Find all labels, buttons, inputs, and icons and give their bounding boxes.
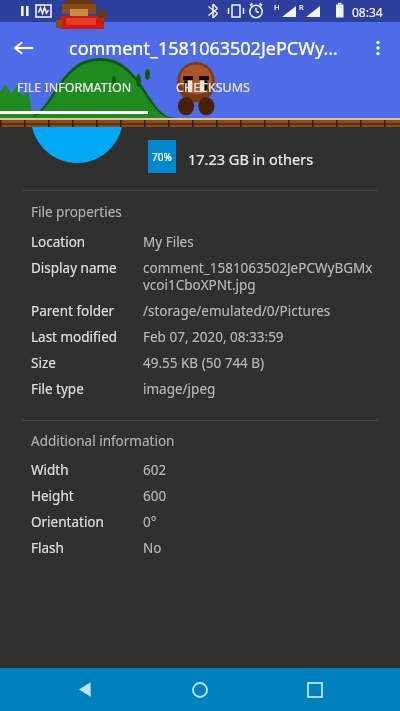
staticText: image/jpeg xyxy=(143,380,216,398)
staticText: File type xyxy=(31,380,84,398)
staticText: Width xyxy=(31,461,69,479)
button[interactable]: CHECKSUMS xyxy=(148,74,278,100)
button[interactable]: FILE INFORMATION xyxy=(0,74,148,100)
button[interactable]: More options xyxy=(356,26,400,70)
staticText: H xyxy=(274,2,280,12)
staticText: comment_1581063502JePCWy… xyxy=(69,36,338,61)
staticText: Location xyxy=(31,233,86,251)
button[interactable]: Back xyxy=(55,668,115,711)
staticText: My Files xyxy=(143,233,194,251)
staticText: CHECKSUMS xyxy=(176,79,250,96)
staticText: File properties xyxy=(31,203,122,221)
staticText: 17.23 GB in others xyxy=(188,149,314,169)
staticText: R xyxy=(299,2,304,12)
staticText: /storage/emulated/0/Pictures xyxy=(143,302,331,320)
staticText: 49.55 KB (50 744 B) xyxy=(143,354,265,372)
staticText: Orientation xyxy=(31,513,104,531)
staticText: Height xyxy=(31,487,74,505)
staticText: 70% xyxy=(152,150,172,164)
staticText: Additional information xyxy=(31,432,175,450)
button[interactable]: Recent apps xyxy=(285,668,345,711)
staticText: No xyxy=(143,539,162,557)
staticText: Parent folder xyxy=(31,302,115,320)
staticText: 602 xyxy=(143,461,167,479)
button[interactable]: Back xyxy=(0,24,48,72)
staticText: FILE INFORMATION xyxy=(17,79,132,96)
button[interactable]: Home xyxy=(170,668,230,711)
staticText: Feb 07, 2020, 08:33:59 xyxy=(143,328,284,346)
staticText: 600 xyxy=(143,487,167,505)
staticText: 08:34 xyxy=(352,4,383,20)
staticText: 0° xyxy=(143,513,157,531)
staticText: Size xyxy=(31,354,56,372)
staticText: comment_1581063502JePCWyBGMx vcoi1CboXPN… xyxy=(143,259,373,294)
staticText: Last modified xyxy=(31,328,118,346)
staticText: Flash xyxy=(31,539,64,557)
staticText: Display name xyxy=(31,259,117,277)
